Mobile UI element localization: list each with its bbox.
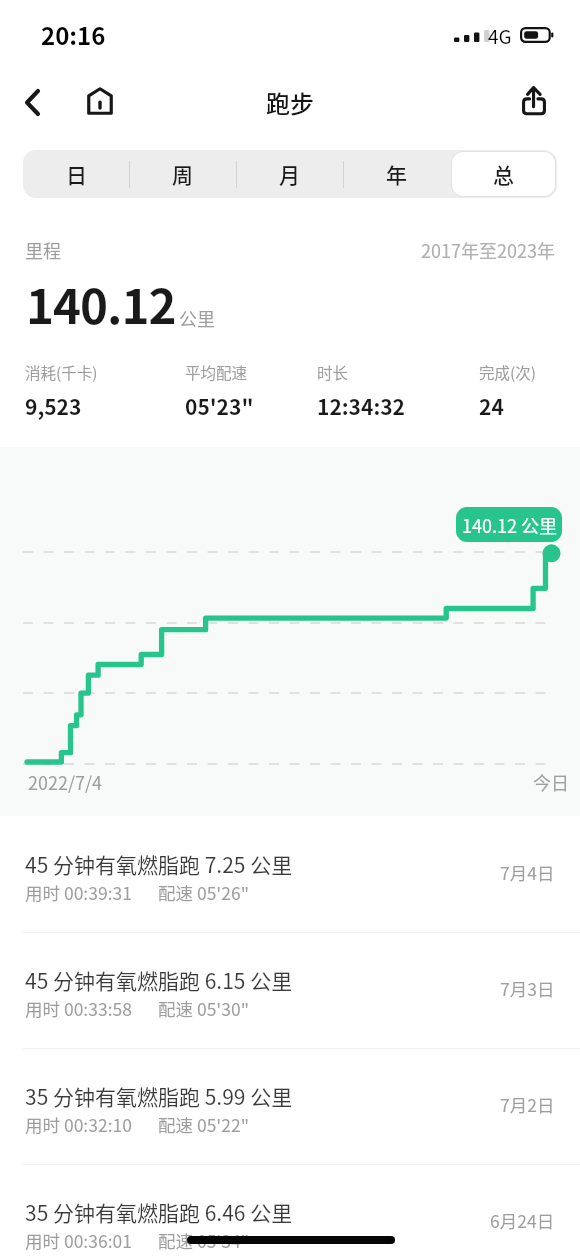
staticText: 2017年至2023年	[421, 237, 555, 263]
staticText: 35 分钟有氧燃脂跑 5.99 公里	[25, 1081, 293, 1111]
staticText: 日	[66, 159, 87, 189]
staticText: 05'23"	[185, 391, 254, 421]
staticText: 7月3日	[500, 976, 555, 1001]
button[interactable]: Share	[512, 79, 556, 123]
staticText: 平均配速	[185, 361, 248, 383]
staticText: 今日	[533, 769, 569, 795]
staticText: 跑步	[266, 85, 314, 120]
button[interactable]: Back	[10, 80, 54, 124]
staticText: 12:34:32	[317, 391, 405, 421]
button[interactable]: 45 分钟有氧燃脂跑 7.25 公里	[0, 816, 580, 932]
staticText: 7月2日	[500, 1092, 555, 1117]
staticText: 配速 05'34"	[158, 1228, 249, 1253]
staticText: 6月24日	[490, 1208, 555, 1233]
staticText: 140.12	[26, 269, 176, 338]
staticText: 7月4日	[500, 860, 555, 885]
staticText: 总	[493, 159, 514, 189]
button[interactable]: 日	[23, 150, 129, 198]
staticText: 用时 00:39:31	[25, 880, 132, 905]
staticText: 配速 05'22"	[158, 1112, 249, 1137]
staticText: 年	[386, 159, 407, 189]
staticText: 用时 00:32:10	[25, 1112, 132, 1137]
staticText: 完成(次)	[479, 361, 536, 383]
staticText: 配速 05'30"	[158, 996, 249, 1021]
staticText: 用时 00:36:01	[25, 1228, 132, 1253]
staticText: 公里	[179, 305, 215, 331]
staticText: 配速 05'26"	[158, 880, 249, 905]
button[interactable]: 35 分钟有氧燃脂跑 5.99 公里	[0, 1049, 580, 1164]
staticText: 月	[279, 159, 300, 189]
button[interactable]: Home	[78, 79, 122, 123]
staticText: 消耗(千卡)	[25, 361, 98, 383]
staticText: 140.12 公里	[462, 512, 557, 538]
staticText: 时长	[317, 361, 349, 383]
staticText: 周	[172, 159, 193, 189]
staticText: 里程	[25, 237, 61, 263]
staticText: 45 分钟有氧燃脂跑 7.25 公里	[25, 849, 293, 879]
button[interactable]: 35 分钟有氧燃脂跑 6.46 公里	[0, 1165, 580, 1256]
button[interactable]: 45 分钟有氧燃脂跑 6.15 公里	[0, 933, 580, 1048]
staticText: 35 分钟有氧燃脂跑 6.46 公里	[25, 1197, 293, 1227]
staticText: 9,523	[25, 391, 82, 421]
staticText: 4G	[488, 22, 512, 50]
staticText: 20:16	[41, 17, 106, 52]
button[interactable]: 周	[129, 150, 236, 198]
button[interactable]: 月	[236, 150, 343, 198]
staticText: 45 分钟有氧燃脂跑 6.15 公里	[25, 965, 293, 995]
staticText: 用时 00:33:58	[25, 996, 132, 1021]
staticText: 24	[479, 391, 504, 421]
staticText: 2022/7/4	[28, 769, 103, 795]
button[interactable]: 年	[343, 150, 450, 198]
button[interactable]: 总	[450, 150, 557, 198]
